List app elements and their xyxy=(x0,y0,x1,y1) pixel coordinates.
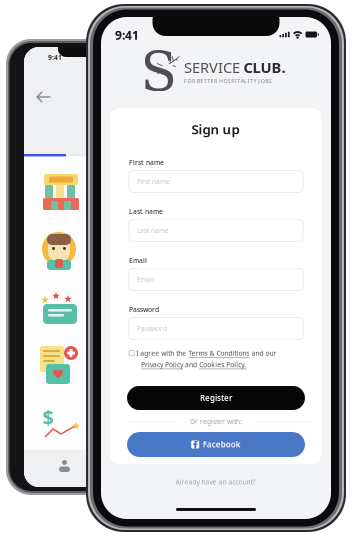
staticText: Facebook xyxy=(203,439,241,450)
staticText: Last name xyxy=(137,226,169,235)
staticText: First name xyxy=(129,158,164,167)
staticText: Password xyxy=(137,324,167,333)
staticText: Password xyxy=(129,305,159,314)
staticText: and xyxy=(185,360,197,369)
staticText: Email xyxy=(129,256,147,265)
staticText: S xyxy=(140,41,193,103)
staticText: $ xyxy=(42,404,53,430)
staticText: Register xyxy=(200,393,232,403)
staticText: Terms & Conditions xyxy=(188,349,249,358)
staticText: SERVICE xyxy=(184,57,240,77)
staticText: and our xyxy=(251,349,276,358)
staticText: 9:41 xyxy=(115,27,139,43)
staticText: First name xyxy=(137,177,170,186)
staticText: 9:41 xyxy=(48,53,62,62)
button[interactable]: Already have an account? xyxy=(110,476,321,488)
button[interactable]: Facebook xyxy=(127,432,305,457)
staticText: Already have an account? xyxy=(175,478,255,486)
staticText: Or register with: xyxy=(190,417,242,426)
staticText: Privacy Policy xyxy=(141,360,183,369)
staticText: Email xyxy=(137,275,155,284)
staticText: FOR BETTER HOSPITALITY JOBS xyxy=(184,77,272,84)
staticText: Cookies Policy. xyxy=(199,360,246,369)
staticText: Last name xyxy=(129,207,163,216)
staticText: Sign up xyxy=(191,120,239,138)
staticText: CLUB. xyxy=(244,57,286,77)
button[interactable]: Register xyxy=(127,386,305,410)
staticText: I agree with the xyxy=(136,349,186,358)
